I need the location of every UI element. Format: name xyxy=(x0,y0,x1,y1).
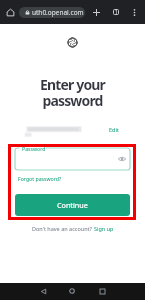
staticText: 1 xyxy=(115,9,118,15)
staticText: Edit xyxy=(109,126,119,133)
button[interactable]: Back xyxy=(35,283,51,299)
button[interactable]: Show password xyxy=(117,154,127,164)
staticText: Don't have an account? xyxy=(32,225,92,232)
button[interactable]: Recent apps xyxy=(94,283,110,299)
staticText: uth0.openai.com xyxy=(32,8,84,17)
button[interactable]: New tab xyxy=(89,5,103,19)
button[interactable]: Home xyxy=(64,283,80,299)
button[interactable]: Continue xyxy=(15,194,130,216)
button[interactable]: More options xyxy=(127,5,141,19)
button[interactable]: Sign up xyxy=(92,225,114,232)
staticText: Continue xyxy=(57,200,88,210)
button[interactable]: Forgot password? xyxy=(16,174,64,183)
staticText: Password xyxy=(22,145,46,152)
button[interactable]: uth0.openai.com xyxy=(19,7,85,18)
button[interactable]: Tabs xyxy=(109,5,123,19)
button[interactable]: Home xyxy=(3,5,17,19)
staticText: Forgot password? xyxy=(18,175,62,182)
staticText: Sign up xyxy=(94,225,114,232)
button[interactable]: Edit xyxy=(106,124,122,135)
staticText: Enter your password xyxy=(0,75,145,110)
